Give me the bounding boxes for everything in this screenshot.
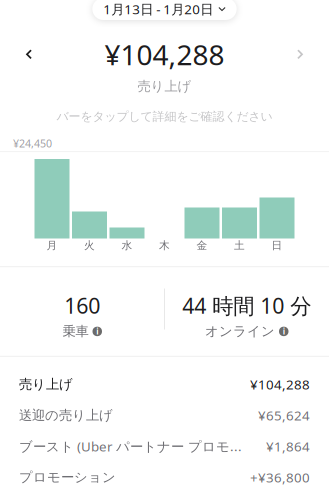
button[interactable]: 44 時間 10 分 bbox=[164, 291, 329, 340]
button[interactable]: 売り上げ bbox=[0, 369, 329, 400]
staticText: 売り上げ bbox=[19, 376, 73, 392]
button[interactable] bbox=[222, 152, 257, 238]
staticText: オンライン bbox=[205, 323, 275, 340]
staticText: 44 時間 10 分 bbox=[182, 291, 311, 320]
staticText: ¥65,624 bbox=[258, 406, 310, 424]
button[interactable]: 160 bbox=[0, 291, 164, 340]
button[interactable]: 1月13日 - 1月20日 bbox=[92, 0, 237, 20]
staticText: 木 bbox=[159, 239, 170, 252]
button[interactable] bbox=[34, 152, 69, 238]
button[interactable] bbox=[184, 152, 219, 238]
staticText: ¥104,288 bbox=[104, 36, 224, 73]
button[interactable]: 送迎の売り上げ bbox=[0, 400, 329, 431]
staticText: ブースト (Uber パートナー プロモーショ… bbox=[19, 437, 254, 455]
staticText: 1月13日 - 1月20日 bbox=[103, 0, 213, 18]
button[interactable]: ブースト (Uber パートナー プロモーショ… bbox=[0, 431, 329, 462]
staticText: 土 bbox=[234, 239, 245, 252]
staticText: 160 bbox=[64, 291, 100, 320]
staticText: ¥24,450 bbox=[13, 136, 52, 150]
staticText: 乗車 bbox=[62, 323, 88, 340]
staticText: 送迎の売り上げ bbox=[19, 407, 113, 423]
staticText: 月 bbox=[46, 239, 57, 252]
staticText: +¥36,800 bbox=[250, 468, 310, 486]
staticText: プロモーション bbox=[19, 469, 116, 485]
button[interactable] bbox=[72, 152, 107, 238]
staticText: i bbox=[283, 326, 285, 337]
staticText: バーをタップして詳細をご確認ください bbox=[56, 109, 272, 124]
staticText: 水 bbox=[121, 239, 132, 252]
staticText: 金 bbox=[196, 239, 207, 252]
button[interactable] bbox=[109, 152, 144, 238]
button[interactable]: Previous period bbox=[0, 36, 48, 73]
button[interactable] bbox=[259, 152, 294, 238]
staticText: 日 bbox=[271, 239, 282, 252]
staticText: 売り上げ bbox=[137, 78, 191, 94]
staticText: ¥1,864 bbox=[266, 437, 310, 455]
staticText: i bbox=[96, 326, 98, 337]
button[interactable]: プロモーション bbox=[0, 462, 329, 493]
staticText: ¥104,288 bbox=[250, 375, 310, 393]
staticText: 火 bbox=[84, 239, 95, 252]
button[interactable]: Next period bbox=[281, 36, 329, 73]
